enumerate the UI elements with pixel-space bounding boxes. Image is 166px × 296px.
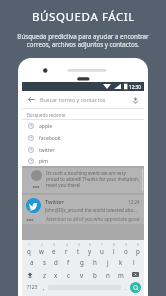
button[interactable]: g [75,255,88,268]
staticText: a [30,258,34,266]
staticText: u [100,247,104,255]
button[interactable]: Attention to all of you who appreciate g… [26,216,140,224]
button[interactable]: Back [22,91,144,108]
button[interactable]: z [38,268,50,281]
button[interactable]: 8 [108,242,120,255]
button[interactable]: l [127,255,140,268]
staticText: 2 [41,242,43,247]
button[interactable]: Back [26,94,37,105]
staticText: 9 [125,242,127,247]
staticText: 6 [89,242,91,247]
staticText: Búsqueda reciente [27,112,66,118]
staticText: BÚSQUEDA FÁCIL [32,9,135,25]
staticText: 12:30 [129,84,141,90]
button[interactable]: 0 [132,242,144,255]
staticText: facebook [39,135,61,142]
staticText: i [113,247,115,255]
staticText: m [118,271,124,279]
staticText: apple [39,123,53,130]
staticText: f [67,258,70,266]
staticText: , [43,284,45,292]
button[interactable]: a [26,255,38,268]
button[interactable]: Voice search [129,94,141,106]
staticText: y [88,247,92,255]
button[interactable]: twitter [22,144,144,156]
button[interactable]: 7 [96,242,108,255]
button[interactable]: 2 [35,242,48,255]
staticText: p [136,247,140,255]
button[interactable]: b [88,268,101,281]
staticText: 0 [137,242,139,247]
button[interactable]: Shift [22,268,38,281]
staticText: 5 [78,242,80,247]
staticText: t [77,247,80,255]
button[interactable]: s [38,255,50,268]
staticText: b [93,271,97,279]
staticText: Búsqueda predictiva para ayudar a encont… [15,32,151,48]
staticText: k [119,258,123,266]
staticText: h [93,258,97,266]
staticText: 7 [101,242,103,247]
staticText: g [80,258,84,266]
staticText: Attention to all of you who appreciate g… [46,216,140,222]
button[interactable]: 5 [72,242,84,255]
button[interactable]: k [114,255,127,268]
staticText: l [133,258,135,266]
button[interactable]: v [75,268,88,281]
button[interactable]: 1 [22,242,35,255]
staticText: j [107,258,109,266]
button[interactable]: , [39,281,48,294]
button[interactable]: Search [130,282,141,293]
staticText: Its such a touching event we are very pr… [46,170,140,188]
button[interactable]: n [101,268,114,281]
button[interactable]: h [88,255,101,268]
button[interactable]: facebook [22,132,144,144]
staticText: r [65,247,68,255]
button[interactable]: d [50,255,62,268]
staticText: v [80,271,84,279]
staticText: Twitter [45,198,128,206]
staticText: e [52,247,56,255]
staticText: s [43,258,46,266]
staticText: pim [39,158,49,165]
staticText: d [54,258,58,266]
button[interactable]: j [101,255,114,268]
staticText: x [54,271,58,279]
staticText: Buscar correo y contactos [40,96,129,103]
button[interactable]: pim [22,156,144,166]
button[interactable]: c [62,268,75,281]
staticText: w [39,247,44,255]
staticText: John@DJs_around the world tweeted abo... [45,207,137,213]
staticText: twitter [39,147,55,154]
button[interactable]: 4 [60,242,72,255]
button[interactable]: x [50,268,62,281]
button[interactable]: 9 [120,242,132,255]
button[interactable]: Twitter [26,198,140,213]
button[interactable]: Its such a touching event we are very pr… [26,170,140,191]
staticText: ?123 [27,284,38,291]
staticText: z [43,271,46,279]
button[interactable]: ?123 [25,281,39,294]
button[interactable]: apple [22,120,144,132]
staticText: 8 [113,242,115,247]
staticText: q [27,247,31,255]
staticText: n [106,271,110,279]
button[interactable]: Backspace [127,268,144,281]
button[interactable]: 3 [48,242,60,255]
staticText: 3 [53,242,55,247]
button[interactable]: f [62,255,75,268]
staticText: . [125,284,127,292]
staticText: o [124,247,128,255]
button[interactable]: m [114,268,127,281]
staticText: c [67,271,70,279]
button[interactable]: 6 [84,242,96,255]
staticText: 12:24 [128,199,140,205]
staticText: 1 [28,242,30,247]
staticText: 4 [66,242,68,247]
button[interactable]: . [121,281,130,294]
